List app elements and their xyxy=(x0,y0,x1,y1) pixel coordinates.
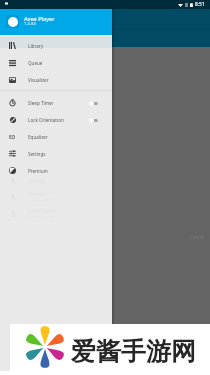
button[interactable]: Visualizer xyxy=(0,71,112,88)
button[interactable]: Sleep Timer xyxy=(0,94,112,111)
staticText: 8:51 xyxy=(195,1,205,8)
staticText: Avee Player xyxy=(24,15,55,23)
staticText: 爱酱手游网 xyxy=(71,336,196,367)
button[interactable]: Premium xyxy=(0,162,112,179)
button[interactable]: EQ xyxy=(0,128,112,145)
other: Notification xyxy=(5,2,8,5)
staticText: Visualizer xyxy=(28,77,49,83)
staticText: Sleep Timer xyxy=(28,100,54,106)
staticText: Equalizer xyxy=(28,134,48,140)
staticText: Queue xyxy=(28,60,43,66)
staticText: 0 items xyxy=(189,234,205,240)
button[interactable]: Queue xyxy=(0,54,112,71)
staticText: Settings xyxy=(28,151,46,157)
button[interactable]: Library xyxy=(0,37,112,54)
staticText: Premium xyxy=(28,168,48,174)
staticText: 1.2.83 xyxy=(24,21,36,27)
button[interactable]: Settings xyxy=(0,145,112,162)
staticText: Lock Orientation xyxy=(28,117,64,123)
staticText: Library xyxy=(28,43,44,49)
button[interactable]: Lock Orientation xyxy=(0,111,112,128)
button[interactable]: Avee Player xyxy=(0,9,112,35)
staticText: EQ xyxy=(9,134,16,139)
button[interactable]: Podcast xyxy=(0,172,112,189)
